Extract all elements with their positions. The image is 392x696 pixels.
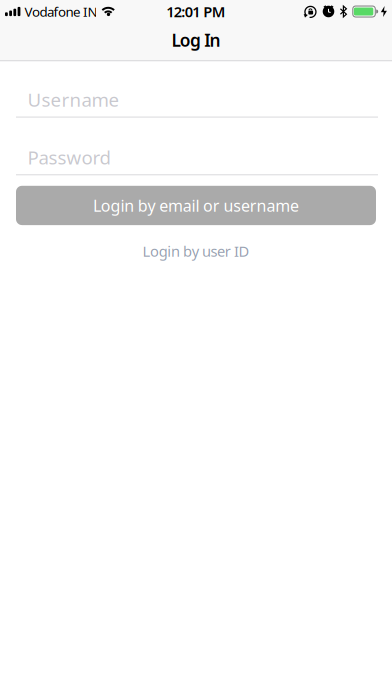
staticText: Vodafone IN (24, 3, 97, 20)
staticText: Login by user ID (142, 241, 249, 261)
staticText: 12:01 PM (166, 2, 226, 21)
button[interactable]: Password (0, 118, 392, 175)
button[interactable]: Username (0, 61, 392, 118)
staticText: Username (27, 87, 119, 112)
button[interactable]: Login by user ID (142, 241, 249, 261)
button[interactable]: Login by email or username (16, 186, 376, 225)
staticText: Password (27, 145, 110, 170)
staticText: Log In (171, 28, 220, 51)
staticText: Login by email or username (93, 195, 299, 216)
